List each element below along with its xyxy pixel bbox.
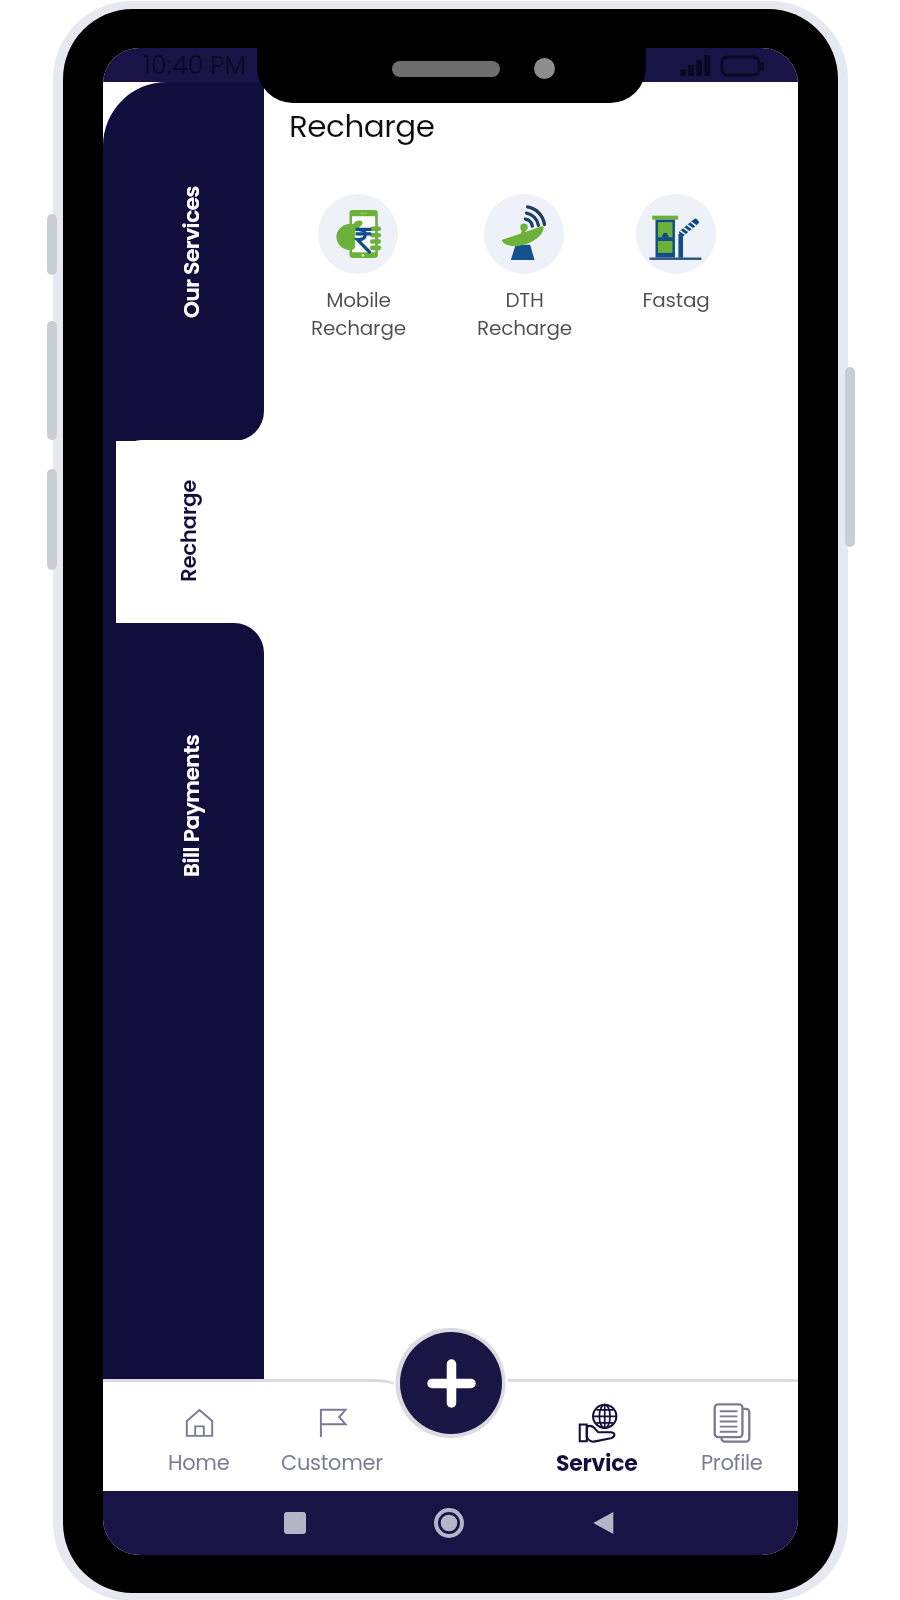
- staticText: Bill Payments: [176, 734, 206, 877]
- button[interactable]: Add: [400, 1332, 502, 1434]
- button[interactable]: [103, 82, 264, 441]
- button[interactable]: DTH Recharge: [444, 194, 604, 342]
- button[interactable]: Profile: [662, 1404, 798, 1477]
- staticText: Mobile Recharge: [311, 286, 406, 342]
- staticText: Home: [168, 1448, 230, 1477]
- staticText: 10:40 PM: [143, 48, 247, 82]
- staticText: Our Services: [176, 186, 206, 318]
- staticText: Recharge: [173, 479, 203, 582]
- button[interactable]: [116, 440, 286, 623]
- staticText: Recharge: [289, 104, 435, 147]
- button[interactable]: Service: [527, 1404, 667, 1479]
- button[interactable]: Fastag: [596, 194, 756, 314]
- staticText: Customer: [281, 1448, 383, 1477]
- button[interactable]: Customer: [262, 1404, 402, 1477]
- staticText: Fastag: [642, 286, 710, 314]
- staticText: Profile: [701, 1448, 763, 1477]
- staticText: DTH Recharge: [477, 286, 572, 342]
- button[interactable]: Home: [129, 1404, 269, 1477]
- staticText: Service: [556, 1448, 638, 1479]
- button[interactable]: [103, 623, 264, 1385]
- button[interactable]: Mobile Recharge: [278, 194, 438, 342]
